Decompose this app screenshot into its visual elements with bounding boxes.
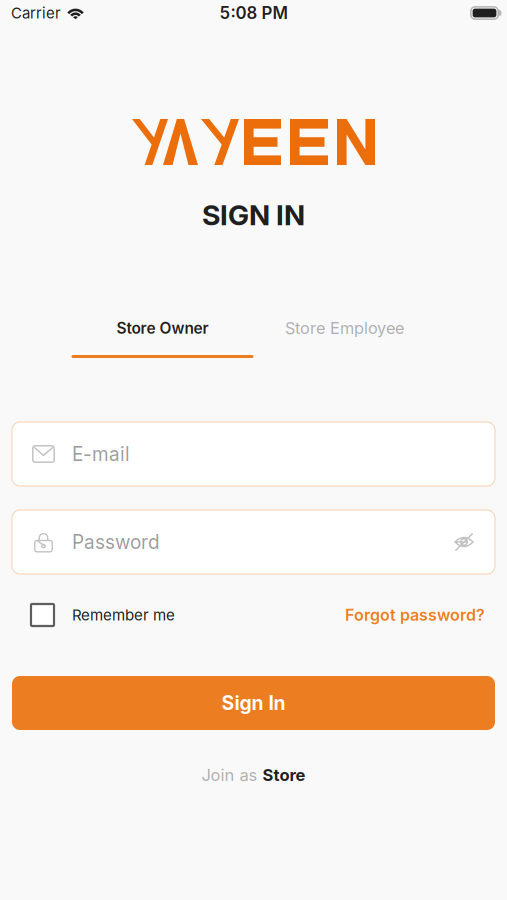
staticText: SIGN IN bbox=[202, 198, 305, 232]
staticText: Store Owner bbox=[116, 319, 208, 337]
button[interactable]: Show password bbox=[454, 532, 474, 551]
staticText: Sign In bbox=[221, 691, 285, 715]
staticText: Forgot password? bbox=[345, 605, 485, 625]
button[interactable]: Join as bbox=[201, 765, 305, 785]
button[interactable]: E-mail bbox=[12, 422, 495, 486]
button[interactable]: Remember me bbox=[31, 602, 175, 628]
button[interactable]: Store Owner bbox=[71, 318, 253, 358]
button[interactable]: Store Employee bbox=[253, 318, 435, 358]
staticText: 5:08 PM bbox=[219, 3, 287, 23]
staticText: Join as bbox=[201, 765, 257, 785]
staticText: Store bbox=[262, 765, 305, 785]
button[interactable]: Forgot password? bbox=[345, 602, 485, 628]
staticText: E-mail bbox=[72, 442, 130, 465]
staticText: Remember me bbox=[72, 606, 175, 624]
staticText: Store Employee bbox=[285, 318, 404, 338]
button[interactable]: Sign In bbox=[12, 676, 495, 730]
staticText: Carrier bbox=[11, 4, 61, 22]
staticText: Password bbox=[72, 530, 160, 553]
button[interactable]: Password bbox=[12, 510, 495, 574]
